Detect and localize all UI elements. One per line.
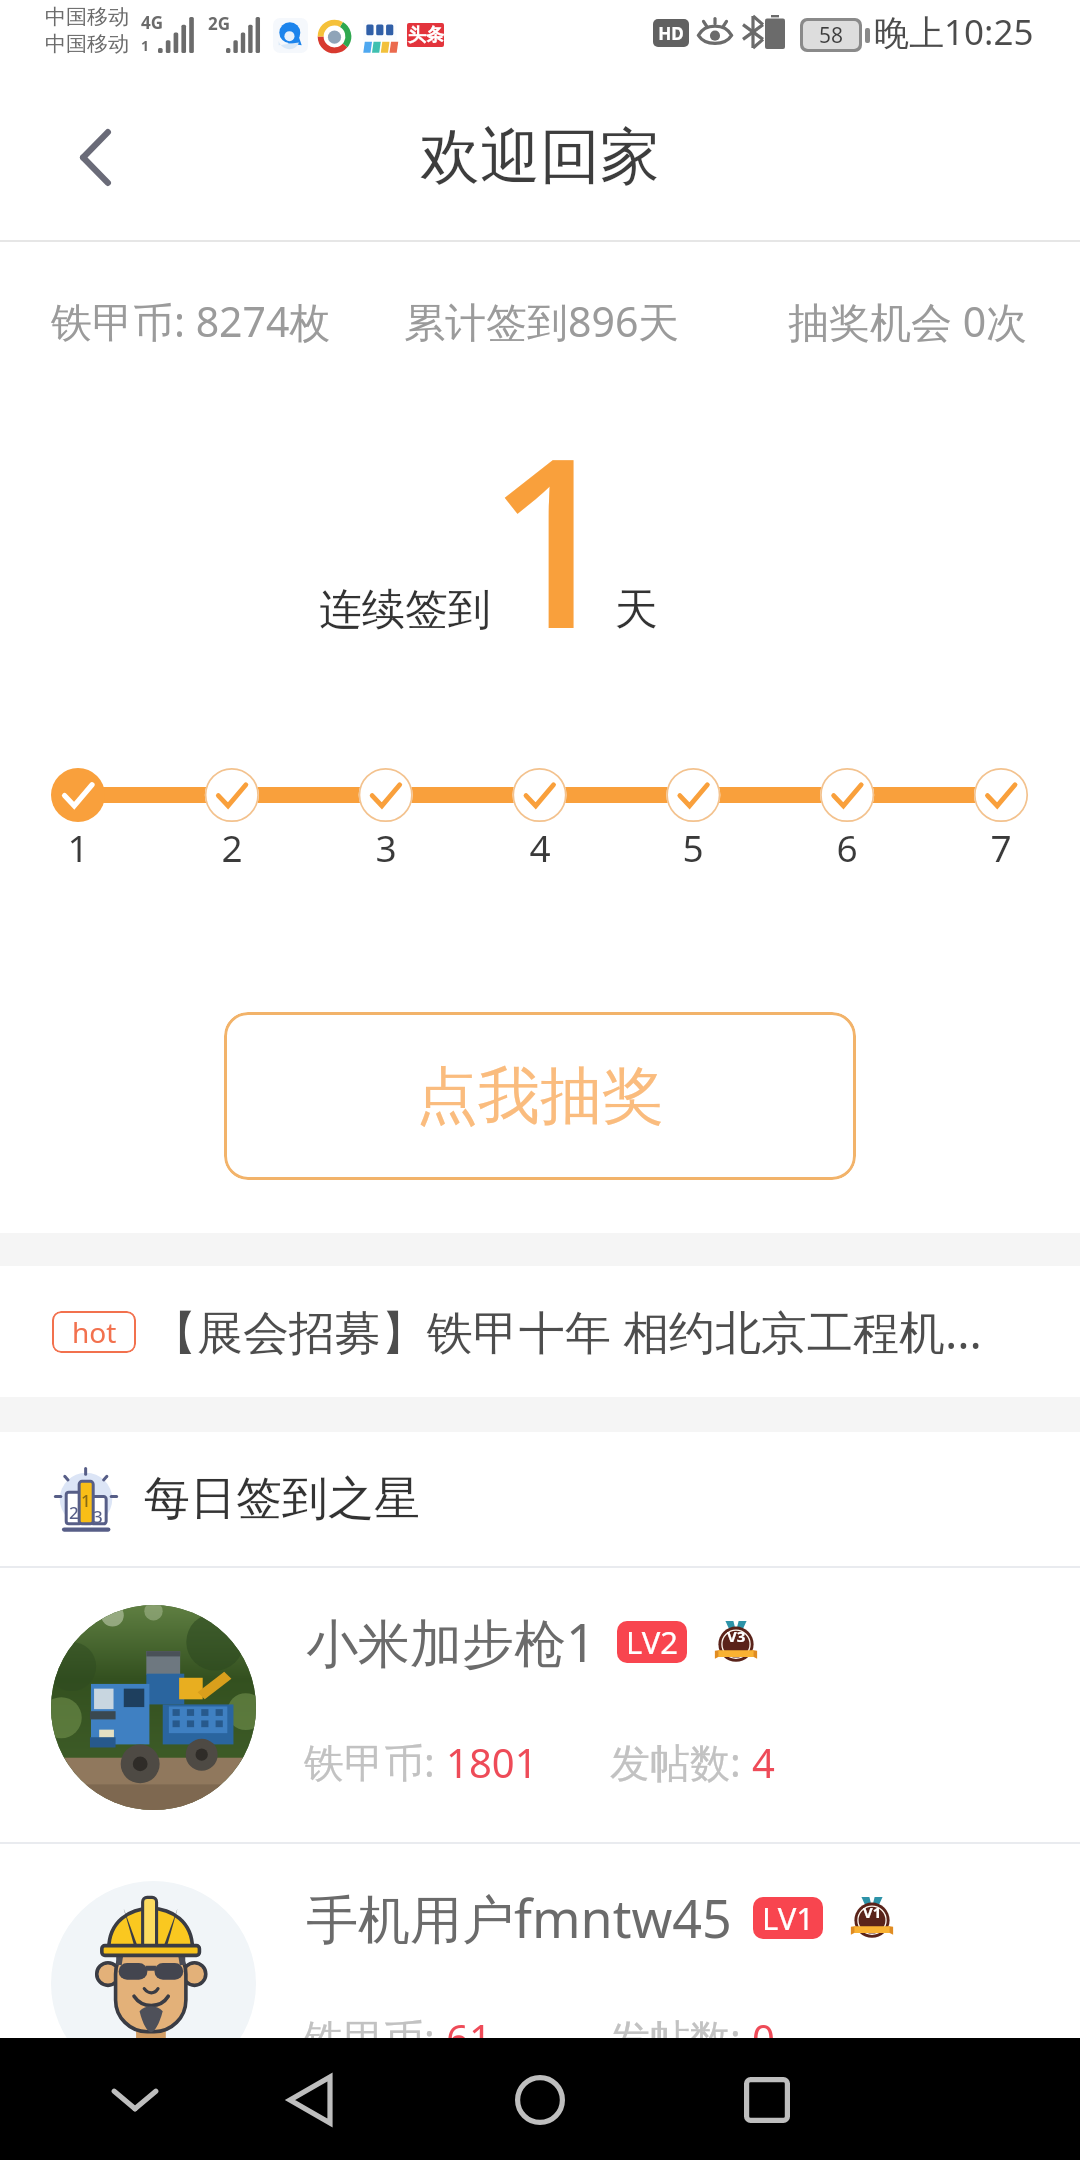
staticText: 铁甲币: 8274枚 bbox=[51, 293, 331, 349]
staticText: V3 bbox=[727, 1626, 746, 1646]
staticText: 5 bbox=[682, 822, 704, 872]
button[interactable]: Hide keyboard bbox=[75, 2040, 195, 2160]
button[interactable]: 小米加步枪1 bbox=[0, 1568, 1080, 1842]
staticText: 1 bbox=[67, 822, 89, 872]
button[interactable]: Home bbox=[480, 2040, 600, 2160]
staticText: LV1 bbox=[762, 1897, 814, 1939]
staticText: 累计签到896天 bbox=[404, 293, 680, 349]
staticText: 天 bbox=[615, 583, 658, 637]
staticText: 【展会招募】铁甲十年 相约北京工程机... bbox=[151, 1300, 982, 1363]
staticText: 铁甲币: bbox=[304, 1734, 446, 1789]
staticText: 头条 bbox=[408, 24, 444, 47]
button[interactable]: Back bbox=[47, 109, 143, 205]
staticText: 欢迎回家 bbox=[420, 119, 660, 195]
staticText: 1 bbox=[486, 377, 621, 677]
staticText: 连续签到 bbox=[319, 583, 491, 637]
button[interactable]: 手机用户fmntw45 bbox=[0, 1844, 1080, 2118]
staticText: 发帖数: bbox=[610, 1734, 752, 1789]
staticText: 小米加步枪1 bbox=[306, 1606, 596, 1677]
staticText: 中国移动 bbox=[45, 4, 129, 30]
staticText: 铁甲币: bbox=[304, 2010, 446, 2065]
staticText: 点我抽奖 bbox=[416, 1057, 664, 1135]
staticText: 3 bbox=[93, 1505, 103, 1523]
button[interactable]: 点我抽奖 bbox=[224, 1012, 856, 1180]
staticText: hot bbox=[72, 1313, 117, 1351]
staticText: 1 bbox=[141, 36, 150, 55]
button[interactable]: Recents bbox=[707, 2040, 827, 2160]
staticText: 4 bbox=[752, 1735, 775, 1789]
staticText: 中国移动 bbox=[45, 31, 129, 57]
staticText: 2G bbox=[208, 12, 231, 35]
staticText: 4 bbox=[529, 822, 551, 872]
staticText: 2 bbox=[69, 1501, 79, 1519]
staticText: 3 bbox=[375, 822, 397, 872]
staticText: 手机用户fmntw45 bbox=[306, 1882, 732, 1953]
staticText: 每日签到之星 bbox=[144, 1470, 420, 1528]
staticText: 晚上10:25 bbox=[874, 8, 1034, 56]
button[interactable]: 2 bbox=[0, 1432, 1080, 1566]
staticText: 58 bbox=[819, 21, 844, 49]
staticText: 6 bbox=[836, 822, 858, 872]
staticText: 0 bbox=[752, 2011, 775, 2065]
button[interactable]: Back bbox=[250, 2040, 370, 2160]
staticText: 1 bbox=[81, 1489, 91, 1507]
staticText: 61 bbox=[446, 2011, 492, 2065]
staticText: 2 bbox=[221, 822, 243, 872]
staticText: 4G bbox=[141, 11, 164, 34]
staticText: 1801 bbox=[446, 1735, 538, 1789]
staticText: 7 bbox=[990, 822, 1012, 872]
staticText: V1 bbox=[863, 1902, 882, 1922]
button[interactable]: hot bbox=[0, 1266, 1080, 1397]
staticText: 抽奖机会 0次 bbox=[788, 293, 1028, 349]
staticText: LV2 bbox=[626, 1621, 678, 1663]
staticText: 发帖数: bbox=[610, 2010, 752, 2065]
staticText: HD bbox=[658, 22, 684, 45]
